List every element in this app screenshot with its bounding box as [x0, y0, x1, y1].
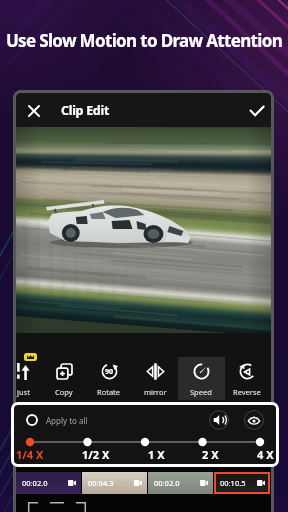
staticText: Use Slow Motion to Draw Attention [0, 29, 288, 52]
staticText: 1/2 X [82, 447, 110, 462]
staticText: Speed [190, 387, 212, 397]
button[interactable]: 00:02.0 [148, 472, 213, 494]
button[interactable]: 00:02.0 [16, 472, 81, 494]
staticText: 2 X [202, 447, 219, 462]
staticText: Clip Edit [61, 102, 110, 119]
button[interactable]: Close [20, 97, 48, 125]
staticText: just [17, 387, 30, 397]
button[interactable]: 00:10.5 [214, 472, 270, 494]
staticText: 00:10.5 [220, 478, 246, 488]
staticText: 1/4 X [16, 447, 44, 462]
button[interactable]: Copy [41, 357, 87, 400]
button[interactable]: 90 [86, 357, 132, 400]
button[interactable]: Volume [209, 410, 229, 430]
button[interactable]: Done [243, 97, 271, 125]
staticText: Reverse [233, 387, 261, 397]
button[interactable]: just [16, 357, 46, 400]
staticText: Rotate [97, 387, 121, 397]
button[interactable]: mirror [132, 357, 178, 400]
staticText: 00:04.3 [88, 478, 114, 488]
staticText: mirror [144, 387, 167, 397]
staticText: 1 X [148, 447, 165, 462]
staticText: Copy [55, 387, 73, 397]
staticText: 4 X [257, 447, 274, 462]
staticText: 90 [105, 367, 114, 377]
button[interactable]: 00:04.3 [82, 472, 147, 494]
button[interactable]: Preview [244, 410, 264, 430]
button[interactable]: Speed [178, 357, 224, 400]
button[interactable]: Apply to all [26, 414, 88, 426]
staticText: Apply to all [46, 415, 88, 426]
staticText: 00:02.0 [154, 478, 180, 488]
staticText: 00:02.0 [22, 478, 48, 488]
button[interactable]: Reverse [224, 357, 270, 400]
